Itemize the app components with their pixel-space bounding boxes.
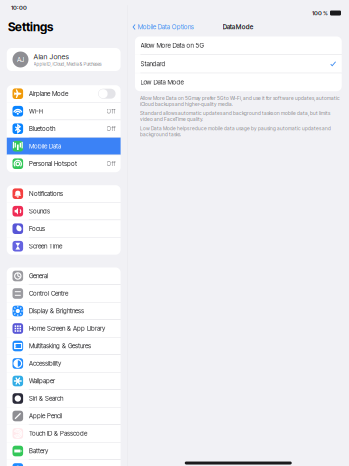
staticText: Mobile Data [29, 142, 61, 150]
staticText: Wallpaper [29, 377, 55, 385]
staticText: Standard allows automatic updates and ba… [140, 110, 330, 122]
button[interactable]: Allow More Data on 5G [135, 36, 342, 54]
staticText: Data Mode [223, 23, 254, 31]
staticText: Low Data Mode [140, 78, 183, 86]
staticText: Low Data Mode helps reduce mobile data u… [140, 125, 331, 137]
staticText: Personal Hotspot [29, 160, 77, 167]
button[interactable]: Bluetooth [7, 120, 121, 137]
button[interactable]: Home Screen & App Library [7, 320, 121, 337]
button[interactable]: Personal Hotspot [7, 155, 121, 172]
button[interactable]: Focus [7, 220, 121, 237]
staticText: Wi-Fi [29, 107, 43, 115]
button[interactable]: AJ [7, 48, 121, 71]
staticText: Display & Brightness [29, 307, 84, 315]
staticText: Off [107, 107, 116, 115]
staticText: Multitasking & Gestures [29, 342, 91, 350]
staticText: Alan Jones [33, 52, 68, 61]
button[interactable]: Battery [7, 442, 121, 459]
staticText: Settings [8, 20, 53, 34]
button[interactable]: Accessibility [7, 355, 121, 372]
button[interactable]: Airplane Mode [7, 85, 121, 102]
button[interactable]: Mobile Data Options [127, 21, 194, 33]
staticText: Mobile Data Options [138, 23, 194, 31]
staticText: Airplane Mode [29, 90, 68, 97]
button[interactable]: Apple Pencil [7, 407, 121, 424]
button[interactable]: Wi-Fi [7, 103, 121, 120]
button[interactable]: Display & Brightness [7, 302, 121, 319]
button[interactable]: Wallpaper [7, 372, 121, 389]
staticText: Focus [29, 225, 45, 232]
staticText: Bluetooth [29, 125, 55, 132]
staticText: Notifications [29, 190, 63, 197]
button[interactable]: Standard [135, 55, 342, 73]
staticText: Allow More Data on 5G [140, 42, 203, 49]
button[interactable]: Siri & Search [7, 390, 121, 407]
staticText: Battery [29, 447, 48, 455]
staticText: Siri & Search [29, 395, 63, 402]
staticText: Home Screen & App Library [29, 325, 105, 332]
button[interactable]: Notifications [7, 185, 121, 202]
staticText: Accessibility [29, 360, 61, 367]
button[interactable]: General [7, 267, 121, 284]
button[interactable]: Touch ID & Passcode [7, 425, 121, 442]
staticText: 10:00 [11, 4, 27, 11]
button[interactable]: Sounds [7, 203, 121, 220]
staticText: Control Centre [29, 290, 68, 297]
staticText: AJ [17, 55, 24, 64]
button[interactable]: Mobile Data [7, 138, 121, 155]
staticText: General [29, 272, 48, 280]
staticText: 100 % [312, 9, 328, 17]
staticText: Allow More Data on 5G may prefer 5G to W… [140, 95, 340, 107]
staticText: Touch ID & Passcode [29, 430, 87, 437]
button[interactable]: Control Centre [7, 285, 121, 302]
staticText: Off [107, 125, 116, 132]
button[interactable]: Multitasking & Gestures [7, 337, 121, 354]
button[interactable]: Screen Time [7, 238, 121, 255]
button[interactable]: Low Data Mode [135, 73, 342, 91]
staticText: Sounds [29, 207, 50, 215]
staticText: Standard [140, 60, 165, 68]
staticText: Off [107, 160, 116, 167]
staticText: Apple ID, iCloud, Media & Purchases [33, 61, 101, 67]
staticText: Screen Time [29, 242, 62, 250]
button[interactable]: Privacy & Security [7, 460, 121, 466]
staticText: Apple Pencil [29, 412, 62, 420]
